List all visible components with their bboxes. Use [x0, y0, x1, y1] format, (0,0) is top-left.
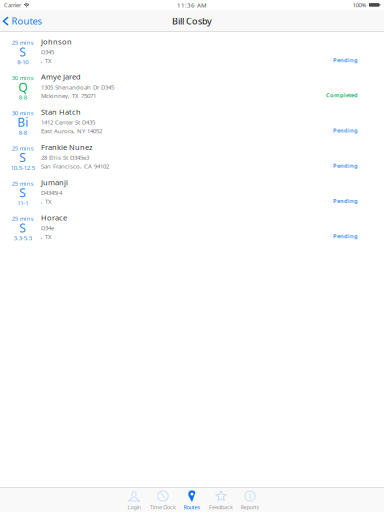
staticText: 11-1	[17, 199, 28, 207]
button[interactable]: Feedback	[206, 486, 235, 512]
staticText: 30 mins	[12, 109, 34, 117]
staticText: Horace	[41, 212, 67, 223]
staticText: 30 mins	[12, 74, 34, 82]
staticText: Jumanji	[41, 177, 68, 187]
staticText: Stan Hatch	[41, 107, 81, 117]
staticText: Time Clock	[150, 503, 176, 511]
button[interactable]: 25 mins	[0, 173, 384, 208]
staticText: Q	[18, 79, 27, 95]
staticText: 8-10	[17, 58, 28, 66]
staticText: 3.3-5.3	[14, 234, 32, 242]
staticText: Bill Cosby	[172, 15, 212, 27]
staticText: Pending	[333, 232, 358, 240]
staticText: Routes	[11, 15, 41, 27]
staticText: S	[19, 220, 26, 236]
staticText: S	[19, 44, 26, 60]
button[interactable]: Reports	[235, 486, 264, 512]
staticText: Pending	[333, 126, 358, 134]
staticText: 25 mins	[12, 179, 34, 187]
button[interactable]: 30 mins	[0, 102, 384, 138]
staticText: , TX	[41, 56, 52, 65]
staticText: 1305 Shenandoah Dr D345	[41, 83, 114, 91]
staticText: Feedback	[209, 503, 233, 511]
staticText: Reports	[240, 503, 259, 511]
staticText: D4345i4	[41, 189, 62, 197]
button[interactable]: 25 mins	[0, 32, 384, 67]
staticText: Johnson	[41, 36, 72, 47]
staticText: Bi	[17, 114, 28, 130]
staticText: 11:36 AM	[177, 1, 207, 9]
staticText: 100%	[352, 1, 366, 9]
button[interactable]: Routes	[177, 486, 206, 512]
staticText: , TX	[41, 197, 52, 205]
staticText: Mckinney, TX 75071	[41, 92, 96, 100]
button[interactable]: Login	[119, 486, 148, 512]
staticText: S	[19, 184, 26, 201]
staticText: Completed	[326, 91, 358, 99]
staticText: Amye Jared	[41, 72, 81, 82]
staticText: Pending	[333, 197, 358, 205]
staticText: Carrier	[4, 1, 21, 9]
staticText: 10.5-12.5	[11, 164, 35, 172]
staticText: Routes	[183, 503, 200, 511]
staticText: East Aurora, NY 14052	[41, 127, 102, 135]
staticText: 1412 Center St D435	[41, 118, 95, 126]
staticText: S	[19, 149, 26, 165]
staticText: 8-8	[19, 93, 27, 101]
staticText: D34e	[41, 224, 54, 232]
staticText: 25 mins	[12, 144, 34, 152]
button[interactable]: Routes	[0, 10, 46, 32]
staticText: 8-8	[19, 128, 27, 136]
button[interactable]: 25 mins	[0, 208, 384, 243]
staticText: San Francisco, CA 94102	[41, 162, 109, 170]
button[interactable]: Time Clock	[148, 486, 177, 512]
staticText: 25 mins	[12, 215, 34, 223]
staticText: Frankie Nunez	[41, 142, 93, 152]
staticText: 28 Ellis St D345e3	[41, 153, 89, 162]
staticText: , TX	[41, 232, 52, 241]
staticText: Pending	[333, 56, 358, 64]
staticText: Login	[127, 503, 140, 511]
staticText: D345	[41, 48, 54, 56]
button[interactable]: 25 mins	[0, 138, 384, 173]
staticText: Pending	[333, 162, 358, 169]
button[interactable]: 30 mins	[0, 67, 384, 102]
staticText: 25 mins	[12, 39, 34, 47]
